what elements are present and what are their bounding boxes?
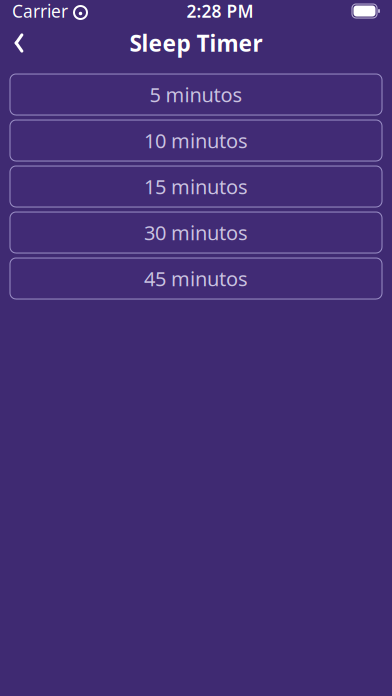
staticText: 2:28 PM	[186, 0, 253, 22]
button[interactable]: 30 minutos	[10, 212, 382, 253]
button[interactable]: 5 minutos	[10, 74, 382, 115]
staticText: 30 minutos	[144, 219, 248, 246]
staticText: 45 minutos	[144, 265, 248, 292]
button[interactable]: 45 minutos	[10, 258, 382, 299]
staticText: 10 minutos	[144, 127, 248, 154]
button[interactable]: Back	[0, 24, 38, 62]
staticText: Sleep Timer	[129, 28, 262, 58]
staticText: 5 minutos	[149, 81, 242, 108]
staticText: Carrier	[12, 0, 68, 22]
button[interactable]: 15 minutos	[10, 166, 382, 207]
staticText: 15 minutos	[144, 173, 248, 200]
button[interactable]: 10 minutos	[10, 120, 382, 161]
